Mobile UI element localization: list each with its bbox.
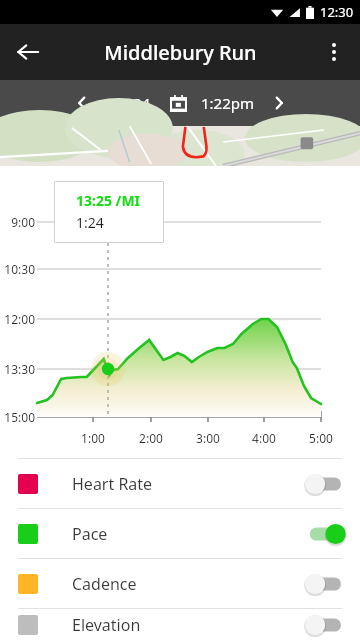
button[interactable]: Cadence bbox=[0, 559, 360, 608]
staticText: 1:00 bbox=[73, 430, 113, 446]
button[interactable]: Off bbox=[306, 572, 344, 596]
staticText: Heart Rate bbox=[72, 473, 153, 495]
button[interactable]: Off bbox=[306, 613, 344, 637]
staticText: Elevation bbox=[72, 614, 141, 636]
staticText: Middlebury Run bbox=[104, 39, 257, 66]
staticText: 1:22pm bbox=[201, 93, 255, 113]
staticText: 15:00 bbox=[2, 409, 35, 425]
staticText: 13:30 bbox=[2, 361, 35, 377]
staticText: 4:00 bbox=[244, 430, 284, 446]
staticText: 13:25 /MI bbox=[76, 191, 141, 210]
button[interactable]: Off bbox=[306, 472, 344, 496]
staticText: 3:00 bbox=[188, 430, 228, 446]
staticText: 1:24 bbox=[76, 213, 104, 232]
staticText: 5:00 bbox=[301, 430, 341, 446]
button[interactable]: More options bbox=[314, 32, 354, 72]
staticText: 10:30 bbox=[2, 261, 35, 277]
staticText: 12:30 bbox=[320, 3, 354, 21]
staticText: 9:00 bbox=[2, 214, 35, 230]
staticText: Cadence bbox=[72, 573, 137, 595]
staticText: Pace bbox=[72, 523, 108, 545]
staticText: 12:00 bbox=[2, 311, 35, 327]
button[interactable]: Heart Rate bbox=[0, 459, 360, 508]
button[interactable]: On bbox=[306, 522, 344, 546]
button[interactable]: Elevation bbox=[0, 609, 360, 640]
button[interactable]: Previous bbox=[66, 87, 98, 119]
button[interactable] bbox=[0, 126, 360, 166]
staticText: 2:00 bbox=[131, 430, 171, 446]
staticText: Apr 24 bbox=[104, 93, 151, 113]
button[interactable]: Back bbox=[8, 32, 48, 72]
button[interactable]: Next bbox=[263, 87, 295, 119]
button[interactable]: Pick date bbox=[163, 88, 193, 118]
button[interactable]: Pace bbox=[0, 509, 360, 558]
